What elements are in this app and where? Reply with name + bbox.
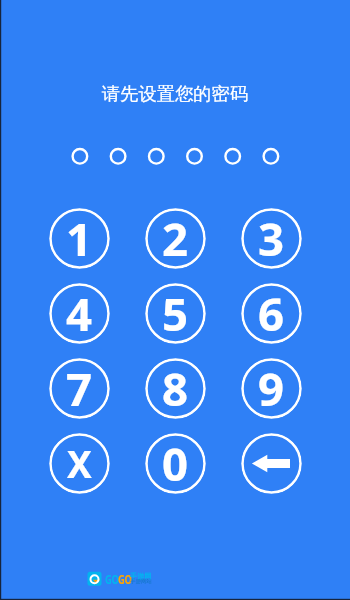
staticText: 9 [258, 358, 285, 418]
button[interactable]: 2 [145, 208, 206, 269]
button[interactable]: 9 [241, 358, 302, 419]
staticText: 7 [66, 358, 93, 418]
staticText: 6 [258, 283, 285, 343]
staticText: 1 [66, 208, 93, 268]
button[interactable]: 5 [145, 283, 206, 344]
staticText: 8 [162, 358, 189, 418]
staticText: 3 [258, 208, 285, 268]
staticText: GO [118, 572, 132, 588]
button[interactable]: 7 [49, 358, 110, 419]
staticText: GO [105, 572, 119, 588]
button[interactable]: Delete [241, 433, 302, 494]
button[interactable]: 0 [145, 433, 206, 494]
staticText: 5 [162, 283, 189, 343]
button[interactable]: 3 [241, 208, 302, 269]
button[interactable]: 1 [49, 208, 110, 269]
staticText: 0 [162, 433, 189, 493]
staticText: 4 [66, 283, 93, 343]
staticText: 手游网 [130, 572, 152, 581]
staticText: 手游网站 [130, 578, 152, 585]
button[interactable]: 4 [49, 283, 110, 344]
button[interactable]: X [49, 433, 110, 494]
button[interactable]: 8 [145, 358, 206, 419]
staticText: 请先设置您的密码 [0, 82, 350, 105]
staticText: X [67, 438, 92, 488]
staticText: 2 [162, 208, 189, 268]
button[interactable]: 6 [241, 283, 302, 344]
